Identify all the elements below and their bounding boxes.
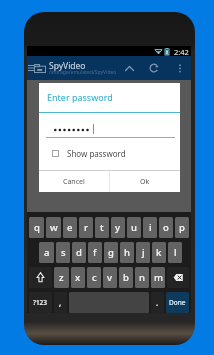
staticText: ?123 [33, 298, 48, 307]
staticText: b [123, 271, 129, 284]
staticText: h [124, 246, 130, 259]
staticText: Show password [67, 148, 126, 159]
button[interactable]: p [175, 217, 189, 238]
button[interactable]: . [151, 292, 164, 313]
button[interactable]: z [54, 267, 69, 288]
staticText: a [44, 246, 50, 259]
staticText: Enter password [47, 91, 113, 103]
button[interactable]: b [119, 267, 133, 288]
staticText: Done [169, 298, 186, 307]
staticText: , [59, 297, 62, 308]
button[interactable]: ?123 [29, 292, 52, 313]
staticText: p [179, 221, 185, 234]
button[interactable]: Refresh [145, 56, 162, 80]
staticText: f [93, 246, 97, 259]
staticText: w [50, 221, 58, 234]
button[interactable]: c [87, 267, 101, 288]
staticText: x [75, 271, 81, 284]
staticText: m [154, 271, 163, 284]
button[interactable]: Collapse [121, 56, 138, 80]
button[interactable]: u [127, 217, 141, 238]
button[interactable]: m [151, 267, 165, 288]
button[interactable]: , [54, 292, 67, 313]
button[interactable]: a [39, 242, 54, 263]
staticText: i [149, 221, 152, 234]
staticText: r [84, 221, 89, 234]
staticText: z [59, 271, 64, 284]
button[interactable]: Show password [39, 144, 180, 162]
staticText: q [34, 221, 40, 234]
staticText: d [76, 246, 82, 259]
button[interactable]: d [72, 242, 86, 263]
button[interactable]: More options [173, 56, 186, 80]
button[interactable]: s [56, 242, 70, 263]
button[interactable]: q [29, 217, 44, 238]
staticText: Ok [140, 177, 150, 187]
staticText: g [108, 246, 114, 259]
staticText: t [100, 221, 104, 234]
staticText: y [115, 221, 121, 234]
button[interactable]: y [111, 217, 125, 238]
staticText: j [142, 246, 145, 259]
button[interactable]: Shift [29, 267, 52, 288]
staticText: Cancel [63, 177, 85, 187]
staticText: 2:42 [174, 47, 189, 57]
button[interactable]: o [159, 217, 173, 238]
staticText: u [131, 221, 137, 234]
staticText: e [67, 221, 73, 234]
staticText: k [156, 246, 162, 259]
staticText: . [156, 297, 159, 308]
button[interactable]: t [95, 217, 109, 238]
button[interactable]: j [136, 242, 150, 263]
button[interactable]: n [135, 267, 149, 288]
staticText: s [61, 246, 66, 259]
button[interactable]: Backspace [167, 267, 189, 288]
staticText: SpyVideo [49, 60, 86, 72]
button[interactable]: v [103, 267, 117, 288]
button[interactable]: h [120, 242, 134, 263]
button[interactable]: Done [166, 292, 189, 313]
staticText: o [163, 221, 169, 234]
button[interactable]: r [79, 217, 93, 238]
button[interactable]: e [63, 217, 77, 238]
staticText: /storage/emulated/SpyVideo [49, 69, 117, 76]
staticText: n [139, 271, 145, 284]
button[interactable]: Ok [110, 171, 180, 192]
staticText: c [92, 271, 97, 284]
button[interactable]: Navigation drawer [26, 56, 35, 80]
button[interactable]: w [46, 217, 61, 238]
button[interactable]: g [104, 242, 118, 263]
button[interactable]: k [152, 242, 166, 263]
button[interactable]: f [88, 242, 102, 263]
button[interactable]: i [143, 217, 157, 238]
button[interactable]: l [168, 242, 182, 263]
staticText: v [107, 271, 113, 284]
button[interactable]: Cancel [39, 171, 109, 192]
button[interactable]: x [71, 267, 85, 288]
staticText: l [174, 246, 177, 259]
